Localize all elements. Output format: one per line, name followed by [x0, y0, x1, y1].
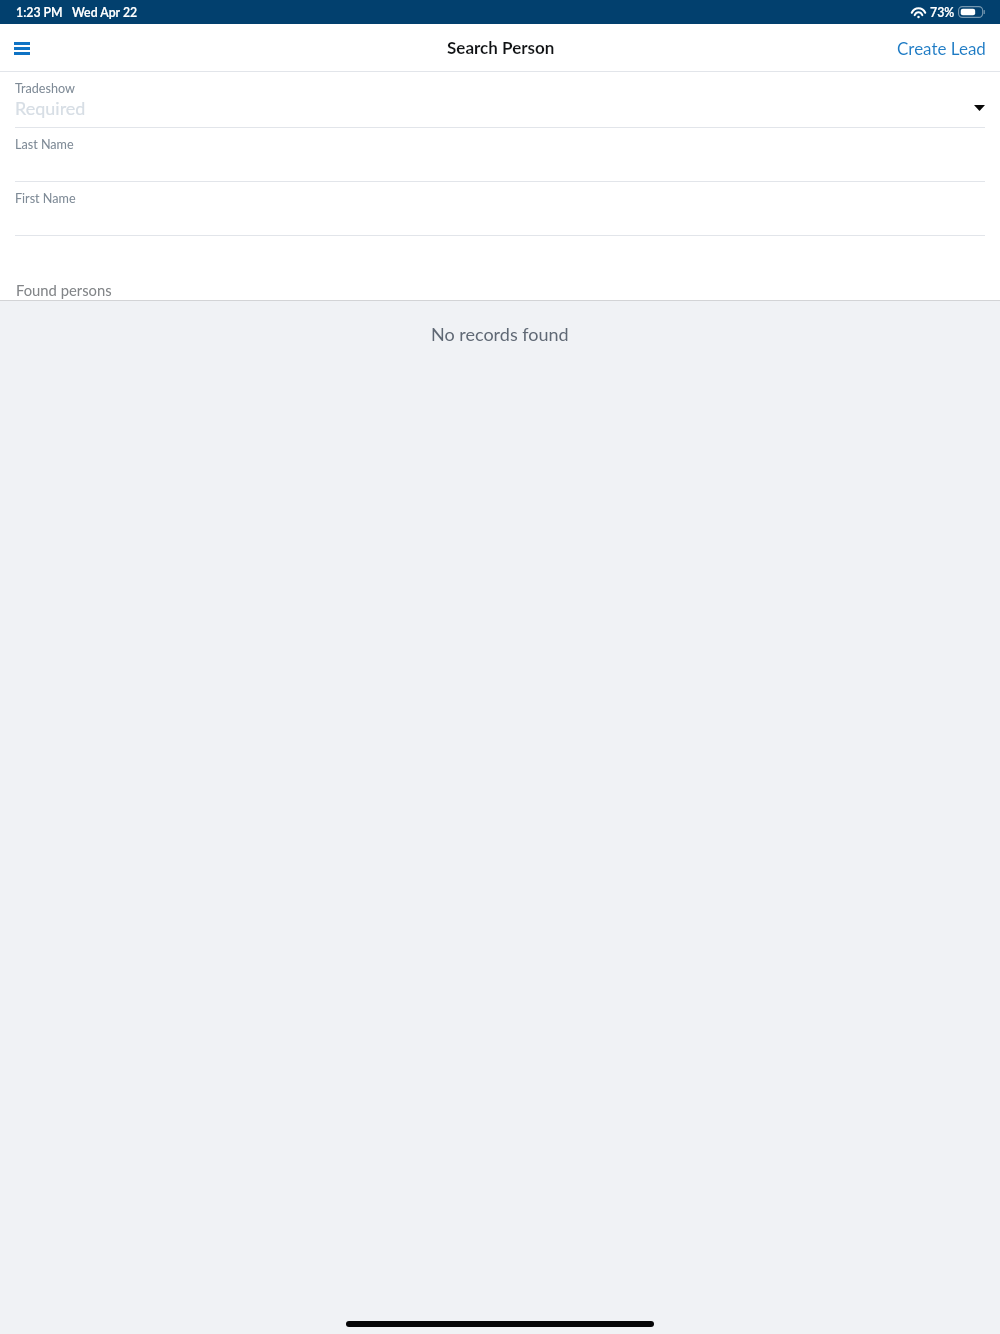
staticText: Create Lead — [897, 38, 986, 58]
staticText: Tradeshow — [15, 81, 75, 96]
button[interactable]: First Name — [0, 182, 1000, 236]
button[interactable]: Open navigation menu — [0, 24, 48, 72]
button[interactable]: Create Lead — [897, 38, 986, 58]
staticText: Search Person — [447, 37, 555, 57]
staticText: First Name — [15, 191, 76, 206]
staticText: Found persons — [16, 281, 112, 299]
staticText: Required — [15, 97, 86, 119]
button[interactable]: Tradeshow, Required — [0, 72, 1000, 128]
staticText: 73% — [930, 5, 955, 20]
other: Battery 73 percent — [958, 6, 985, 18]
staticText: Wed Apr 22 — [72, 5, 138, 20]
other: Wi-Fi connected — [911, 7, 926, 18]
button[interactable]: Last Name — [0, 128, 1000, 182]
staticText: Last Name — [15, 137, 74, 152]
staticText: No records found — [431, 323, 569, 345]
staticText: 1:23 PM — [16, 5, 63, 20]
